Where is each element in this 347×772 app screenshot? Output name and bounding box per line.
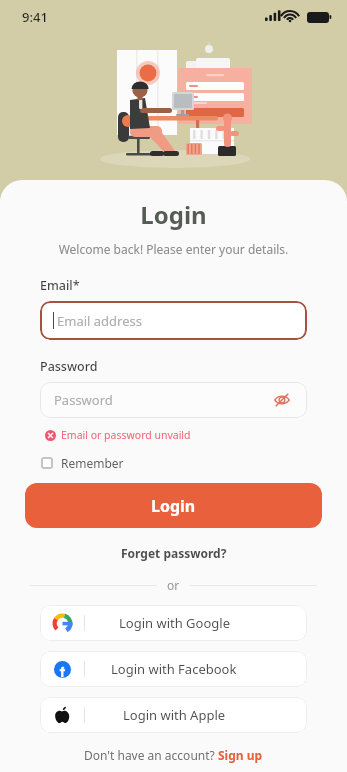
staticText: Forget password?	[121, 545, 227, 561]
staticText: Remember	[61, 455, 124, 471]
staticText: Login with Facebook	[111, 660, 237, 678]
button[interactable]: Email address	[40, 301, 307, 340]
button[interactable]: Login with Apple	[40, 697, 307, 733]
button[interactable]: Login with Google	[40, 605, 307, 641]
staticText: Email address	[57, 312, 142, 330]
staticText: Password	[54, 391, 271, 409]
button[interactable]: Remember	[38, 453, 127, 473]
button[interactable]: Login with Facebook	[40, 651, 307, 687]
staticText: Login	[151, 495, 196, 517]
staticText: Password	[40, 358, 98, 375]
staticText: or	[167, 577, 180, 593]
staticText: Don't have an account?	[84, 747, 218, 763]
staticText: Email*	[40, 277, 80, 294]
button[interactable]: Show password	[271, 389, 293, 411]
staticText: Sign up	[218, 747, 263, 763]
staticText: Welcome back! Please enter your details.	[0, 241, 347, 257]
staticText: Login	[0, 198, 347, 231]
staticText: Login with Google	[119, 614, 230, 632]
button[interactable]: Password	[40, 382, 307, 418]
staticText: 9:41	[22, 8, 48, 26]
staticText: Email or password unvaild	[61, 428, 191, 442]
staticText: Login with Apple	[123, 706, 226, 724]
button[interactable]: Forget password?	[0, 543, 347, 563]
button[interactable]: Sign up	[218, 747, 263, 763]
button[interactable]: Login	[25, 483, 322, 528]
